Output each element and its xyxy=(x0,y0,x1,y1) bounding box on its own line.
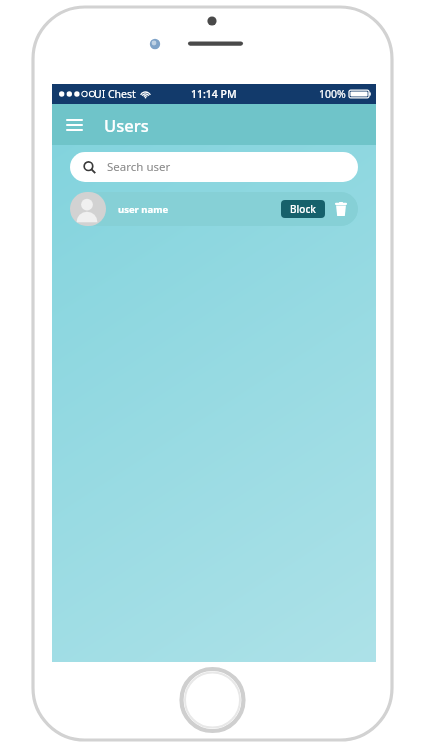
staticText: Block xyxy=(290,202,316,216)
staticText: 100% xyxy=(319,87,346,101)
button[interactable]: Open navigation menu xyxy=(57,108,91,142)
button[interactable]: user name xyxy=(70,192,358,226)
staticText: user name xyxy=(118,203,169,216)
staticText: Search user xyxy=(107,159,171,175)
button[interactable]: Block xyxy=(281,200,325,218)
staticText: 11:14 PM xyxy=(191,87,237,101)
staticText: UI Chest xyxy=(94,87,136,101)
button[interactable]: Delete user xyxy=(332,200,350,218)
staticText: Users xyxy=(104,114,149,136)
button[interactable]: Search user xyxy=(70,152,358,182)
